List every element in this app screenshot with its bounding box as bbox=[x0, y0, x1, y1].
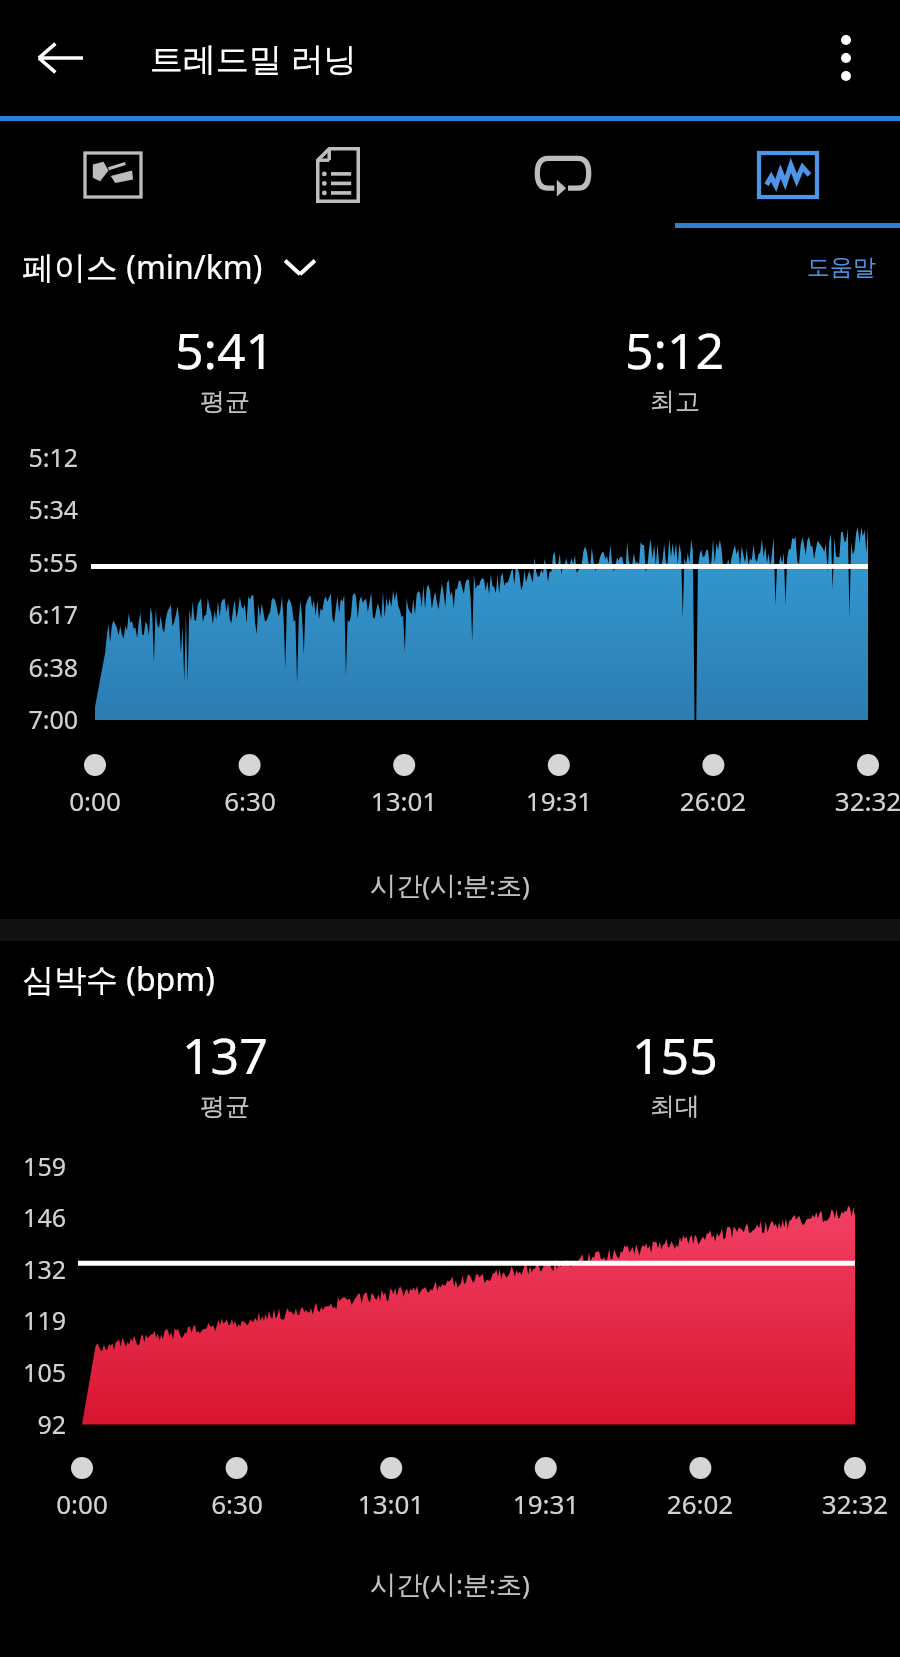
staticText: 최대 bbox=[650, 1091, 700, 1122]
staticText: 0:00 bbox=[34, 1486, 130, 1521]
staticText: 132 bbox=[0, 1252, 66, 1286]
button[interactable]: Map bbox=[0, 121, 225, 228]
button[interactable]: Charts bbox=[675, 121, 900, 228]
button[interactable]: Details bbox=[225, 121, 450, 228]
staticText: 155 bbox=[632, 1021, 718, 1089]
staticText: 심박수 (bpm) bbox=[22, 957, 215, 1001]
staticText: 5:41 bbox=[175, 316, 275, 384]
staticText: 0:00 bbox=[47, 783, 143, 818]
staticText: 5:12 bbox=[625, 316, 725, 384]
staticText: 7:00 bbox=[0, 702, 78, 736]
button[interactable]: More options bbox=[808, 20, 884, 96]
staticText: 트레드밀 러닝 bbox=[150, 36, 357, 81]
staticText: 6:30 bbox=[202, 783, 298, 818]
staticText: 13:01 bbox=[343, 1486, 439, 1521]
staticText: 시간(시:분:초) bbox=[0, 867, 900, 903]
staticText: 105 bbox=[0, 1355, 66, 1389]
staticText: 평균 bbox=[200, 386, 250, 417]
staticText: 32:32 bbox=[807, 1486, 900, 1521]
staticText: 6:38 bbox=[0, 650, 78, 684]
staticText: 26:02 bbox=[665, 783, 761, 818]
staticText: 평균 bbox=[200, 1091, 250, 1122]
staticText: 137 bbox=[182, 1021, 268, 1089]
staticText: 32:32 bbox=[820, 783, 900, 818]
button[interactable]: Back bbox=[22, 20, 98, 96]
staticText: 19:31 bbox=[498, 1486, 594, 1521]
staticText: 5:55 bbox=[0, 545, 78, 579]
button[interactable]: 도움말 bbox=[807, 253, 876, 282]
staticText: 92 bbox=[0, 1407, 66, 1441]
staticText: 최고 bbox=[650, 386, 700, 417]
button[interactable]: Laps bbox=[450, 121, 675, 228]
staticText: 5:12 bbox=[0, 440, 78, 474]
staticText: 159 bbox=[0, 1149, 66, 1183]
staticText: 페이스 (min/km) bbox=[22, 245, 263, 289]
staticText: 119 bbox=[0, 1303, 66, 1337]
staticText: 5:34 bbox=[0, 492, 78, 526]
button[interactable]: 페이스 (min/km) bbox=[22, 245, 317, 289]
staticText: 146 bbox=[0, 1200, 66, 1234]
staticText: 13:01 bbox=[356, 783, 452, 818]
staticText: 6:17 bbox=[0, 597, 78, 631]
staticText: 26:02 bbox=[652, 1486, 748, 1521]
staticText: 6:30 bbox=[189, 1486, 285, 1521]
staticText: 시간(시:분:초) bbox=[0, 1566, 900, 1602]
staticText: 19:31 bbox=[511, 783, 607, 818]
